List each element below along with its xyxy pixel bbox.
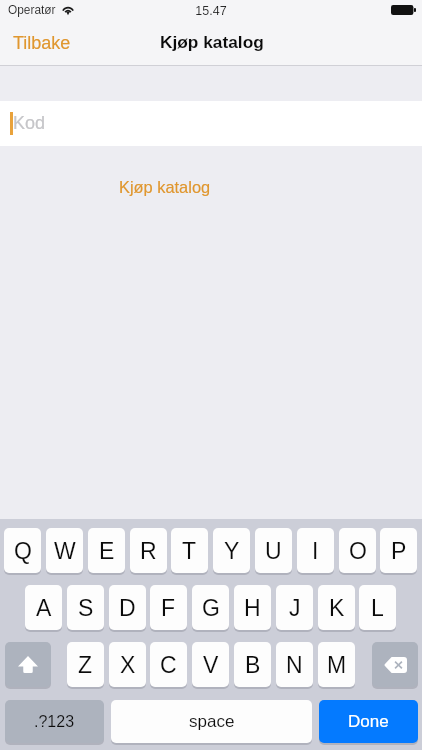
button[interactable]: M — [318, 642, 355, 687]
staticText: D — [119, 595, 136, 621]
button[interactable]: G — [192, 585, 229, 630]
staticText: Done — [348, 712, 389, 731]
button[interactable]: F — [150, 585, 187, 630]
button[interactable]: V — [192, 642, 229, 687]
button[interactable]: Done — [319, 700, 418, 743]
staticText: N — [286, 652, 303, 678]
button[interactable]: O — [339, 528, 376, 573]
button[interactable]: Z — [67, 642, 104, 687]
button[interactable]: B — [234, 642, 271, 687]
staticText: B — [245, 652, 261, 678]
staticText: K — [329, 595, 345, 621]
staticText: Kod — [13, 113, 46, 133]
staticText: .?123 — [34, 713, 75, 731]
button[interactable]: X — [109, 642, 146, 687]
button[interactable]: .?123 — [5, 700, 104, 743]
staticText: Kjøp katalog — [119, 178, 211, 196]
button[interactable]: R — [130, 528, 167, 573]
staticText: P — [391, 538, 407, 564]
staticText: H — [244, 595, 261, 621]
staticText: space — [189, 712, 235, 731]
staticText: R — [140, 538, 157, 564]
button[interactable]: C — [150, 642, 187, 687]
staticText: F — [161, 595, 176, 621]
staticText: V — [203, 652, 219, 678]
staticText: W — [54, 538, 76, 564]
staticText: T — [182, 538, 197, 564]
button[interactable]: Q — [4, 528, 41, 573]
staticText: L — [371, 595, 384, 621]
button[interactable]: T — [171, 528, 208, 573]
staticText: S — [78, 595, 94, 621]
button[interactable]: J — [276, 585, 313, 630]
button[interactable]: W — [46, 528, 83, 573]
staticText: O — [349, 538, 367, 564]
staticText: 15.47 — [0, 4, 422, 18]
staticText: Tilbake — [13, 33, 71, 53]
staticText: X — [120, 652, 136, 678]
other: Wi-Fi signal — [61, 4, 75, 14]
staticText: C — [160, 652, 177, 678]
button[interactable]: Shift — [5, 642, 51, 687]
staticText: Z — [78, 652, 93, 678]
button[interactable]: E — [88, 528, 125, 573]
staticText: U — [265, 538, 282, 564]
button[interactable]: K — [318, 585, 355, 630]
staticText: Operatør — [8, 3, 56, 16]
button[interactable]: space — [111, 700, 312, 743]
staticText: Q — [14, 538, 32, 564]
button[interactable]: P — [380, 528, 417, 573]
button[interactable]: Kod — [0, 101, 422, 146]
staticText: Y — [224, 538, 240, 564]
staticText: J — [289, 595, 301, 621]
button[interactable]: S — [67, 585, 104, 630]
button[interactable]: H — [234, 585, 271, 630]
button[interactable]: Backspace — [372, 642, 418, 687]
button[interactable]: Tilbake — [13, 33, 71, 53]
button[interactable]: A — [25, 585, 62, 630]
button[interactable]: N — [276, 642, 313, 687]
button[interactable]: L — [359, 585, 396, 630]
staticText: A — [36, 595, 52, 621]
staticText: I — [312, 538, 319, 564]
button[interactable]: U — [255, 528, 292, 573]
staticText: Kjøp katalog — [160, 32, 264, 51]
button[interactable]: D — [109, 585, 146, 630]
staticText: M — [327, 652, 347, 678]
staticText: G — [202, 595, 220, 621]
button[interactable]: I — [297, 528, 334, 573]
staticText: E — [99, 538, 115, 564]
button[interactable]: Y — [213, 528, 250, 573]
button[interactable]: Kjøp katalog — [119, 178, 211, 196]
